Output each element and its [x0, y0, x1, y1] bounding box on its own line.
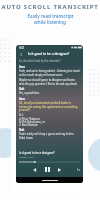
- staticText: Sam: [19, 65, 25, 69]
- staticText: A: 1. a) Priya Thakurar b) The Dalai Lam…: [19, 113, 45, 126]
- staticText: Yes, a good idea.: [19, 91, 40, 95]
- staticText: Easily read transcript: [27, 13, 74, 19]
- staticText: 9:41: [19, 46, 25, 50]
- staticText: 1x: [77, 168, 80, 172]
- button[interactable]: Previous: [32, 167, 38, 173]
- staticText: Is it good to be a designer?: [19, 151, 55, 155]
- staticText: Rob: [19, 87, 25, 91]
- button[interactable]: Back: [19, 52, 24, 57]
- staticText: That's tricky as I'd say a guess and say…: [19, 132, 80, 139]
- staticText: Yeah, and we're being patient - listenin…: [19, 69, 80, 76]
- staticText: Is it good to be a designer?: [28, 52, 70, 56]
- staticText: Podcast 2020: [19, 156, 34, 159]
- button[interactable]: Next: [57, 167, 63, 173]
- staticText: Maybe we should agree to disagree and kn…: [19, 78, 80, 85]
- staticText: Ok, do all you know what spiritual leade…: [19, 101, 80, 111]
- staticText: So, shouldn't dad be the minister?: [19, 59, 61, 63]
- staticText: Sam: [19, 97, 25, 101]
- button[interactable]: Pause: [43, 165, 52, 174]
- staticText: AUTO SCROLL TRANSCRIPT: [1, 3, 99, 11]
- staticText: Rob: [19, 128, 25, 132]
- staticText: while listening: [34, 19, 66, 25]
